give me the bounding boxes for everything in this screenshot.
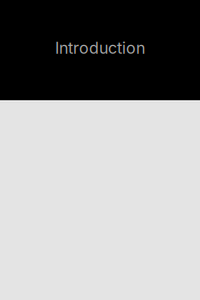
- staticText: Introduction: [55, 38, 145, 58]
